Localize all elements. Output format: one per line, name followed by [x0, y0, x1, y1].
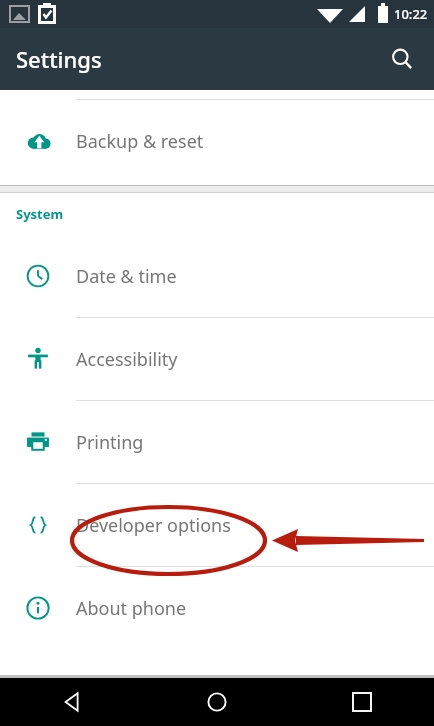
- staticText: Settings: [16, 44, 102, 74]
- staticText: Accessibility: [76, 347, 178, 372]
- button[interactable]: Printing: [0, 401, 434, 483]
- staticText: System: [16, 205, 64, 223]
- button[interactable]: Date & time: [0, 235, 434, 317]
- button[interactable]: Backup & reset: [0, 100, 434, 182]
- button[interactable]: Home: [144, 678, 289, 726]
- button[interactable]: Back: [0, 678, 144, 726]
- button[interactable]: Recent apps: [289, 678, 434, 726]
- staticText: Printing: [76, 430, 144, 455]
- staticText: Developer options: [76, 513, 231, 538]
- button[interactable]: Search: [378, 35, 426, 83]
- staticText: 10:22: [394, 5, 428, 23]
- staticText: About phone: [76, 596, 187, 621]
- staticText: Date & time: [76, 264, 177, 289]
- button[interactable]: Developer options: [0, 484, 434, 566]
- button[interactable]: About phone: [0, 567, 434, 649]
- staticText: Backup & reset: [76, 129, 204, 154]
- button[interactable]: Accessibility: [0, 318, 434, 400]
